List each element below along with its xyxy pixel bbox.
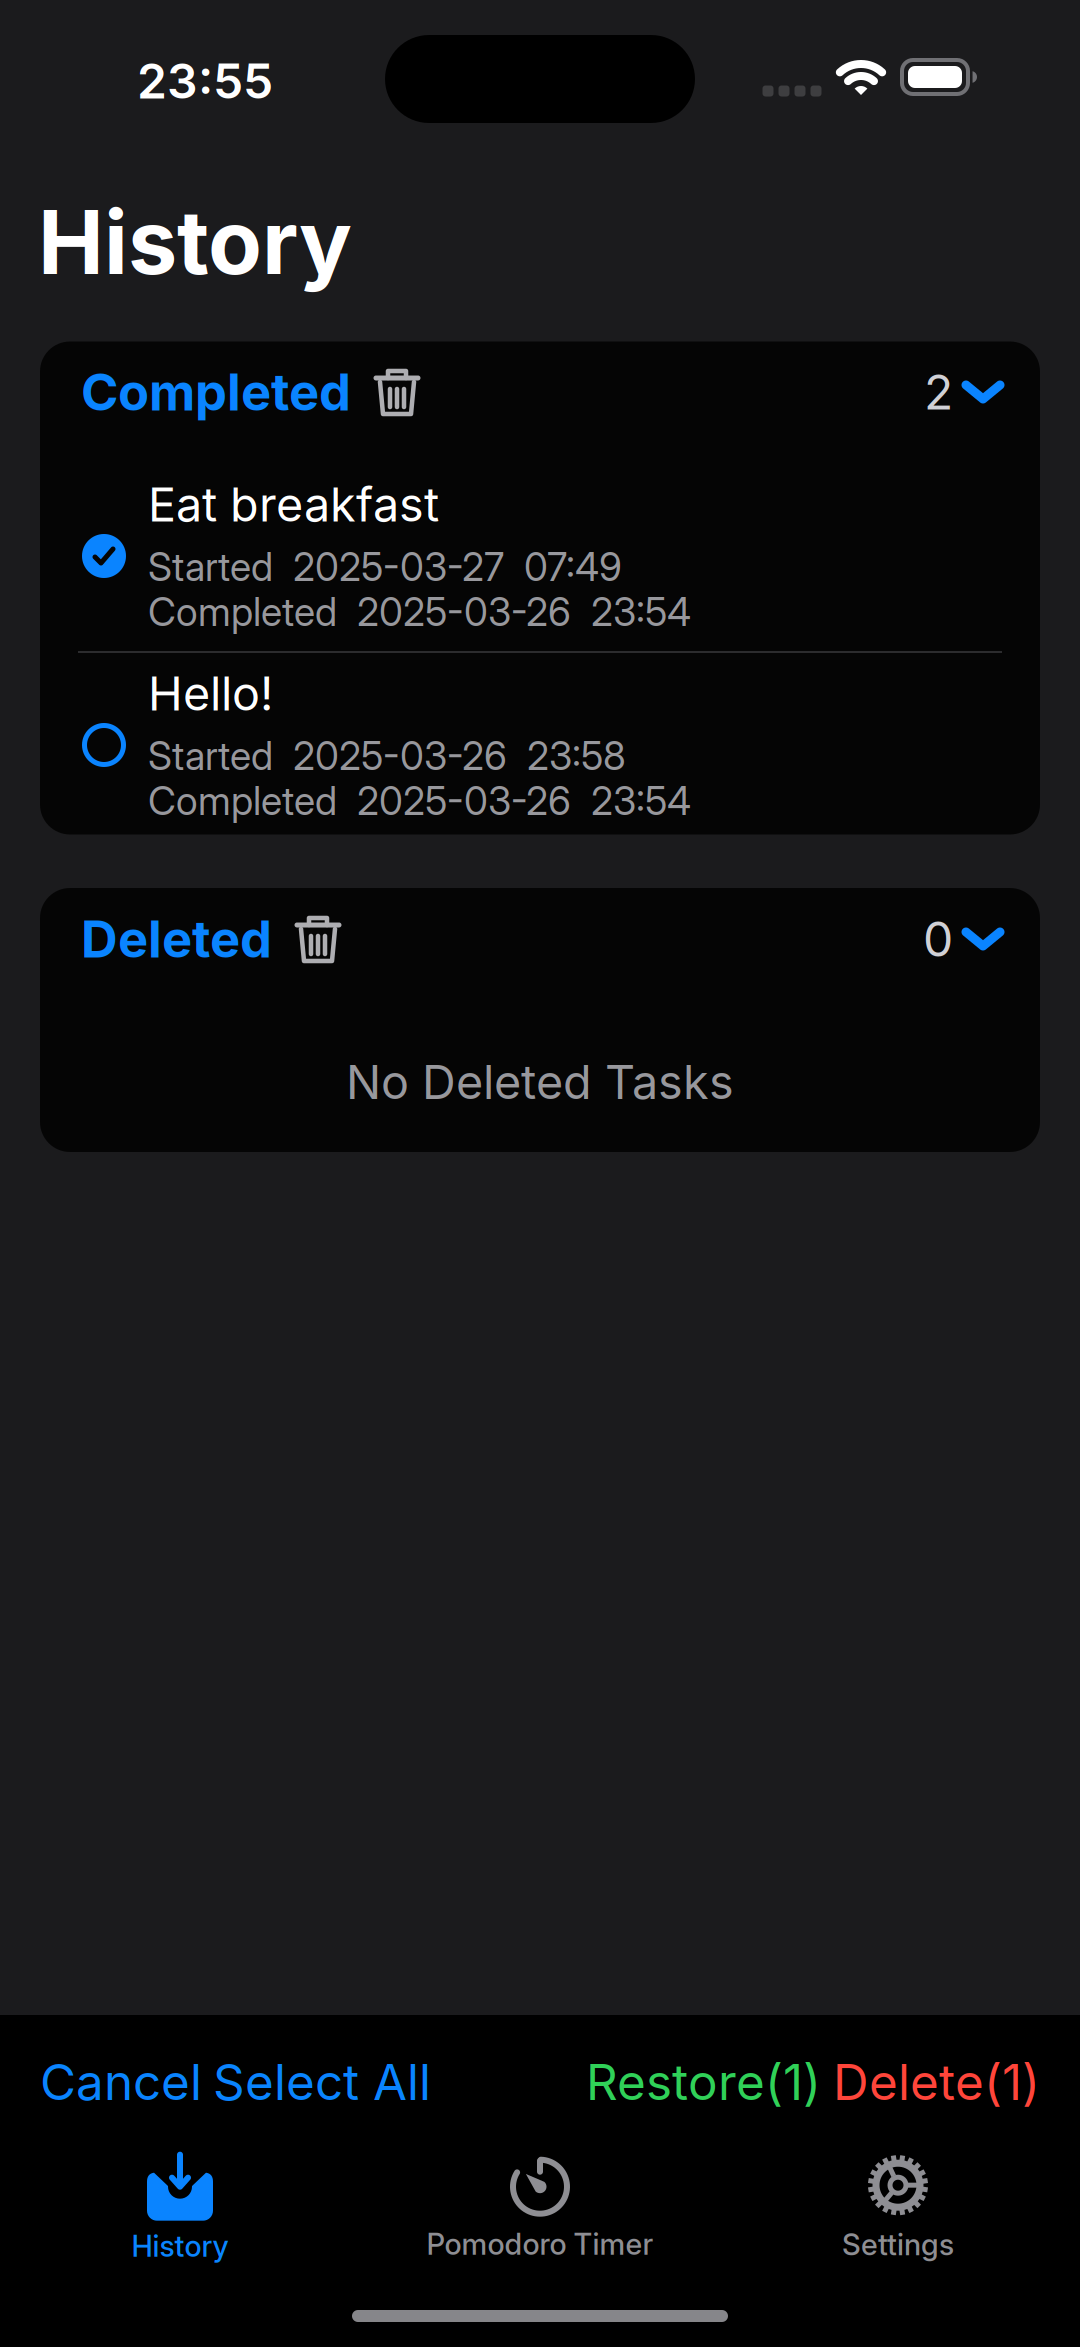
staticText: Restore(1): [586, 2053, 821, 2111]
button[interactable]: History: [131, 2151, 228, 2263]
staticText: Select All: [213, 2053, 431, 2111]
staticText: Deleted: [81, 909, 272, 969]
staticText: Completed 2025-03-26 23:54: [148, 778, 691, 824]
staticText: Hello!: [148, 666, 273, 721]
button[interactable]: Completed: [81, 362, 351, 422]
staticText: History: [38, 190, 352, 294]
button[interactable]: Restore(1): [586, 2053, 821, 2111]
button[interactable]: Cancel: [40, 2053, 202, 2111]
button[interactable]: Deleted: [81, 909, 272, 969]
button[interactable]: Eat breakfast: [60, 463, 1020, 649]
button[interactable]: Delete(1): [833, 2053, 1040, 2111]
staticText: 23:55: [137, 53, 273, 109]
staticText: 2: [924, 364, 953, 420]
staticText: Completed 2025-03-26 23:54: [148, 589, 691, 635]
staticText: History: [131, 2229, 228, 2263]
staticText: Eat breakfast: [148, 477, 439, 532]
button[interactable]: Delete all completed tasks: [373, 364, 421, 420]
staticText: Delete(1): [833, 2053, 1040, 2111]
staticText: Started 2025-03-27 07:49: [148, 544, 622, 590]
staticText: No Deleted Tasks: [346, 1054, 734, 1110]
button[interactable]: Delete all deleted tasks: [294, 911, 342, 967]
button[interactable]: Pomodoro Timer: [426, 2153, 653, 2261]
staticText: Pomodoro Timer: [426, 2227, 653, 2261]
button[interactable]: Hello!: [60, 652, 1020, 838]
button[interactable]: Settings: [842, 2152, 954, 2262]
button[interactable]: Select All: [213, 2053, 431, 2111]
staticText: 0: [923, 911, 953, 967]
staticText: Started 2025-03-26 23:58: [148, 733, 626, 779]
staticText: Cancel: [40, 2053, 202, 2111]
staticText: Settings: [842, 2227, 954, 2262]
button[interactable]: Collapse deleted section: [963, 927, 1003, 951]
button[interactable]: Collapse completed section: [963, 380, 1003, 404]
staticText: Completed: [81, 362, 351, 422]
